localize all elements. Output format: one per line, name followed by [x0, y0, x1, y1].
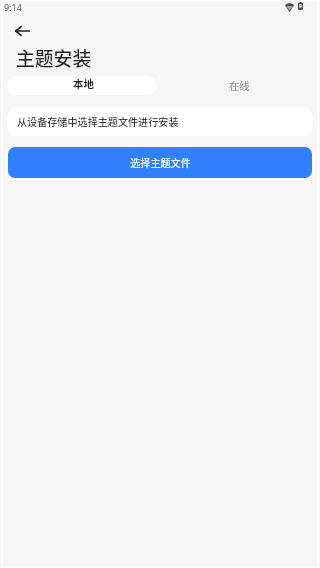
staticText: 从设备存储中选择主题文件进行安装: [17, 114, 179, 129]
button[interactable]: 选择主题文件: [8, 147, 312, 178]
button[interactable]: 从设备存储中选择主题文件进行安装: [7, 107, 313, 136]
staticText: 选择主题文件: [130, 155, 191, 170]
staticText: 9:14: [4, 1, 22, 13]
button[interactable]: 本地: [7, 76, 157, 95]
button[interactable]: 在线: [157, 76, 320, 95]
staticText: 本地: [73, 76, 94, 91]
button[interactable]: Back: [8, 18, 36, 43]
staticText: 在线: [229, 78, 250, 93]
staticText: 主题安装: [16, 44, 92, 71]
